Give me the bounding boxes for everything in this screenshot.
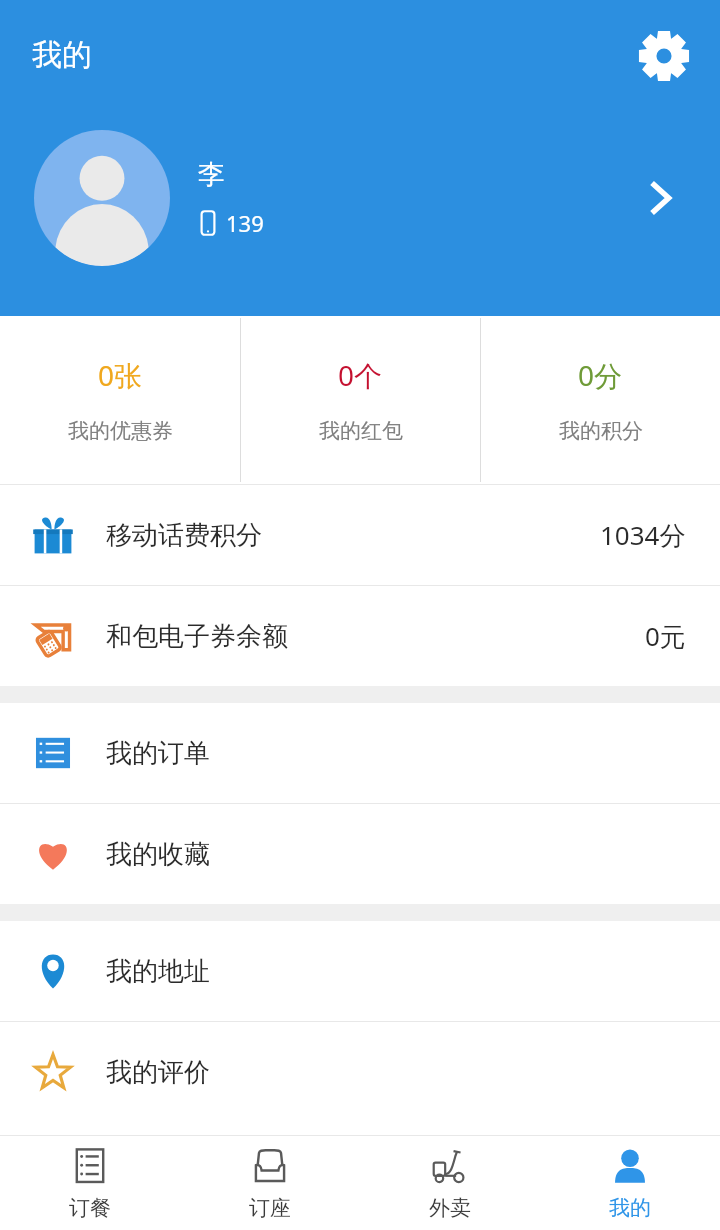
staticText: 我的优惠券 xyxy=(68,418,173,444)
staticText: 我的收藏 xyxy=(106,838,210,871)
button[interactable]: 0个 xyxy=(241,316,480,484)
button[interactable]: 我的地址 xyxy=(0,921,720,1021)
staticText: 0张 xyxy=(98,356,143,394)
staticText: 我的 xyxy=(609,1195,651,1221)
button[interactable]: 我的订单 xyxy=(0,703,720,803)
button[interactable]: 0分 xyxy=(481,316,720,484)
button[interactable]: 和包电子券余额 xyxy=(0,586,720,686)
staticText: 李 xyxy=(198,158,225,192)
staticText: 外卖 xyxy=(429,1195,471,1221)
button[interactable]: 我的收藏 xyxy=(0,804,720,904)
staticText: 0元 xyxy=(645,618,686,654)
staticText: 1034分 xyxy=(600,517,686,553)
staticText: 我的地址 xyxy=(106,955,210,988)
staticText: 我的 xyxy=(32,36,92,74)
staticText: 我的积分 xyxy=(559,418,643,444)
button[interactable]: 我的评价 xyxy=(0,1022,720,1122)
button[interactable]: 订餐 xyxy=(0,1136,180,1230)
button[interactable]: 外卖 xyxy=(360,1136,540,1230)
staticText: 我的订单 xyxy=(106,737,210,770)
staticText: 订座 xyxy=(249,1195,291,1221)
staticText: 订餐 xyxy=(69,1195,111,1221)
button[interactable]: Settings xyxy=(636,28,692,84)
staticText: 我的评价 xyxy=(106,1056,210,1089)
staticText: 0个 xyxy=(338,356,383,394)
staticText: 移动话费积分 xyxy=(106,519,262,552)
button[interactable]: 订座 xyxy=(180,1136,360,1230)
staticText: 0分 xyxy=(578,356,623,394)
other: Profile details xyxy=(636,169,694,227)
button[interactable]: 移动话费积分 xyxy=(0,485,720,585)
button[interactable]: 李 xyxy=(0,118,720,278)
button[interactable]: 0张 xyxy=(0,316,240,484)
staticText: 和包电子券余额 xyxy=(106,620,288,653)
button[interactable]: 我的 xyxy=(540,1136,720,1230)
staticText: 我的红包 xyxy=(319,418,403,444)
staticText: 139 xyxy=(226,208,264,238)
